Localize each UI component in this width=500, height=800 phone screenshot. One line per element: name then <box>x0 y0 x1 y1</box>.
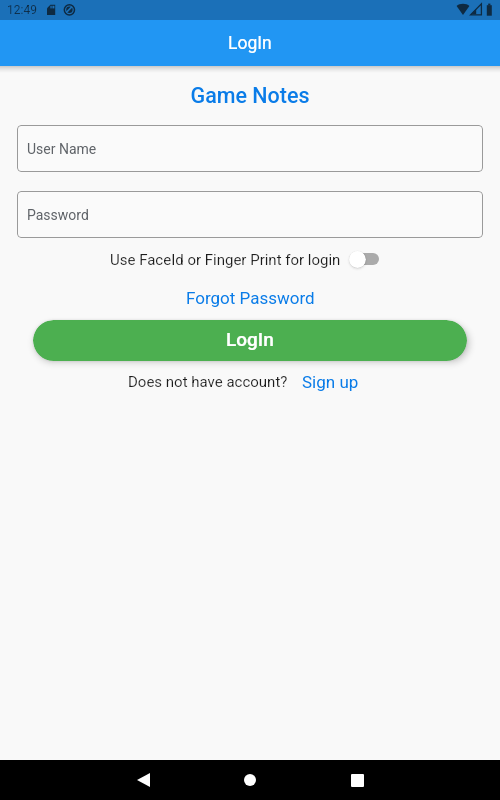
button[interactable]: Sign up <box>288 372 372 392</box>
staticText: Use FaceId or Finger Print for login <box>110 251 341 269</box>
staticText: 12:49 <box>7 3 37 17</box>
button[interactable]: Forgot Password <box>0 288 500 308</box>
button[interactable]: Back <box>125 762 161 798</box>
staticText: User Name <box>27 141 97 157</box>
staticText: Does not have account? <box>128 373 288 391</box>
staticText: LogIn <box>228 33 272 54</box>
staticText: Sign up <box>302 372 359 392</box>
button[interactable]: LogIn <box>33 320 467 361</box>
staticText: Game Notes <box>0 83 500 108</box>
staticText: Password <box>27 207 89 223</box>
button[interactable]: Home <box>232 762 268 798</box>
button[interactable]: User Name <box>17 125 483 172</box>
button[interactable]: Recent apps <box>339 762 375 798</box>
staticText: Forgot Password <box>186 288 315 308</box>
button[interactable]: Password <box>17 191 483 238</box>
staticText: LogIn <box>226 328 274 350</box>
button[interactable]: Use FaceId or Finger Print for login <box>349 248 391 270</box>
